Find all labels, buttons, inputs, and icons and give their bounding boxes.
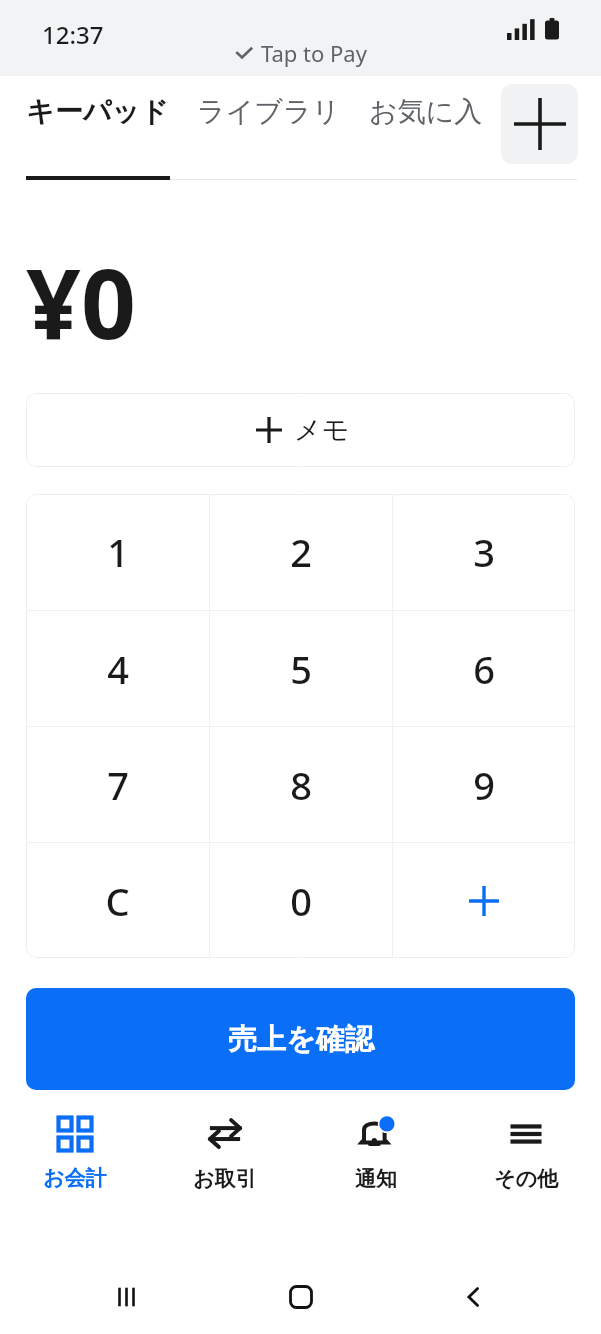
- staticText: 12:37: [42, 18, 104, 51]
- staticText: ¥0: [26, 236, 136, 367]
- button[interactable]: お気に入: [369, 94, 483, 129]
- button[interactable]: C: [26, 843, 209, 958]
- staticText: キーパッド: [26, 94, 169, 129]
- staticText: 9: [473, 759, 495, 811]
- button[interactable]: 6: [392, 611, 575, 726]
- staticText: 3: [473, 526, 495, 578]
- staticText: お会計: [43, 1165, 107, 1191]
- staticText: 2: [290, 526, 312, 578]
- staticText: お取引: [193, 1166, 257, 1192]
- staticText: メモ: [294, 413, 350, 447]
- button[interactable]: 8: [209, 727, 392, 842]
- button[interactable]: お会計: [0, 1091, 150, 1207]
- staticText: ライブラリ: [197, 94, 341, 129]
- button[interactable]: 3: [392, 494, 575, 610]
- button[interactable]: 5: [209, 611, 392, 726]
- staticText: 1: [107, 526, 129, 578]
- button[interactable]: お取引: [150, 1091, 300, 1207]
- button[interactable]: 2: [209, 494, 392, 610]
- staticText: お気に入: [369, 94, 483, 129]
- button[interactable]: 1: [26, 494, 209, 610]
- staticText: 7: [107, 759, 129, 811]
- button[interactable]: 売上を確認: [26, 988, 575, 1090]
- button[interactable]: 0: [209, 843, 392, 958]
- staticText: 5: [290, 643, 312, 695]
- staticText: その他: [494, 1166, 558, 1192]
- button[interactable]: キーパッド: [26, 94, 169, 129]
- button[interactable]: 4: [26, 611, 209, 726]
- staticText: 6: [473, 643, 495, 695]
- button[interactable]: ライブラリ: [197, 94, 341, 129]
- button[interactable]: [392, 843, 575, 958]
- staticText: 売上を確認: [228, 1021, 374, 1058]
- button[interactable]: 7: [26, 727, 209, 842]
- button[interactable]: 新規追加: [501, 84, 578, 164]
- button[interactable]: 通知: [301, 1091, 451, 1207]
- staticText: C: [105, 875, 130, 927]
- staticText: 通知: [355, 1166, 397, 1192]
- button[interactable]: その他: [451, 1091, 601, 1207]
- staticText: 0: [290, 875, 312, 927]
- button[interactable]: メモ: [26, 393, 575, 467]
- staticText: Tap to Pay: [261, 38, 367, 68]
- staticText: 4: [107, 643, 129, 695]
- staticText: 8: [290, 759, 312, 811]
- button[interactable]: 9: [392, 727, 575, 842]
